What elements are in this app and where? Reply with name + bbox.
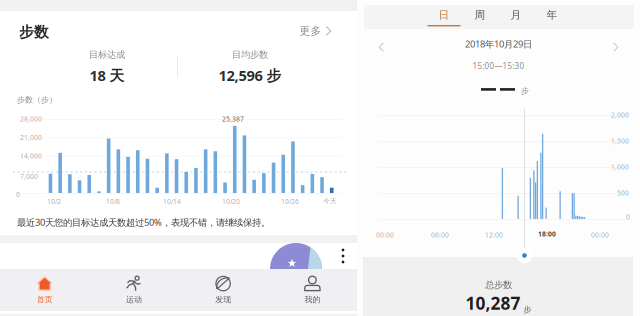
- staticText: 目标达成: [89, 49, 125, 60]
- staticText: 18 天: [89, 65, 124, 85]
- staticText: 28,000: [20, 115, 42, 123]
- staticText: 21,000: [20, 133, 42, 142]
- staticText: 月: [510, 8, 521, 21]
- staticText: 首页: [37, 295, 53, 304]
- staticText: 12:00: [485, 231, 503, 239]
- staticText: 0: [626, 213, 630, 221]
- staticText: 14,000: [20, 152, 42, 160]
- staticText: 0: [16, 190, 20, 199]
- staticText: 步数（步）: [17, 95, 57, 105]
- button[interactable]: Next day: [603, 33, 628, 62]
- staticText: 步: [521, 86, 529, 96]
- staticText: 我的: [304, 295, 320, 304]
- staticText: 500: [617, 189, 629, 197]
- button[interactable]: 发现: [178, 269, 268, 311]
- staticText: 发现: [215, 295, 231, 304]
- staticText: 周: [474, 8, 485, 21]
- staticText: 目均步数: [232, 49, 268, 60]
- button[interactable]: 更多: [296, 23, 336, 39]
- staticText: 06:00: [431, 231, 449, 239]
- staticText: 1,500: [611, 137, 629, 145]
- staticText: 00:00: [376, 231, 394, 239]
- staticText: 7,000: [20, 172, 38, 181]
- staticText: 最近30天您的目标达成天数超过50%，表现不错，请继续保持。: [17, 216, 270, 228]
- staticText: 10/26: [281, 197, 299, 206]
- staticText: 18:00: [538, 230, 556, 238]
- staticText: 日: [438, 8, 449, 21]
- staticText: 2018年10月29日: [465, 38, 532, 50]
- staticText: 更多: [299, 24, 321, 37]
- staticText: 10/20: [222, 197, 240, 206]
- button[interactable]: 首页: [0, 269, 89, 311]
- staticText: 00:00: [591, 231, 609, 239]
- staticText: 1,000: [611, 163, 629, 171]
- staticText: 25,387: [222, 115, 244, 123]
- staticText: 年: [546, 8, 557, 21]
- staticText: 10,287: [465, 291, 520, 314]
- staticText: 总步数: [485, 279, 512, 291]
- button[interactable]: 周: [462, 4, 498, 29]
- staticText: 步数: [19, 23, 49, 41]
- staticText: 今天: [323, 197, 337, 205]
- button[interactable]: 运动: [89, 269, 178, 311]
- staticText: 步: [523, 305, 531, 314]
- button[interactable]: Previous day: [369, 33, 394, 62]
- staticText: 10/14: [163, 197, 181, 206]
- button[interactable]: More options: [333, 243, 353, 269]
- button[interactable]: 月: [498, 4, 534, 29]
- staticText: 15:00—15:30: [472, 61, 524, 71]
- staticText: 12,596 步: [218, 65, 281, 85]
- button[interactable]: 年: [534, 4, 570, 29]
- button[interactable]: 日: [426, 4, 462, 29]
- button[interactable]: 我的: [268, 269, 357, 311]
- staticText: 运动: [126, 295, 142, 304]
- staticText: 2,000: [611, 111, 629, 119]
- staticText: 10/2: [47, 197, 61, 206]
- staticText: 10/8: [106, 197, 120, 206]
